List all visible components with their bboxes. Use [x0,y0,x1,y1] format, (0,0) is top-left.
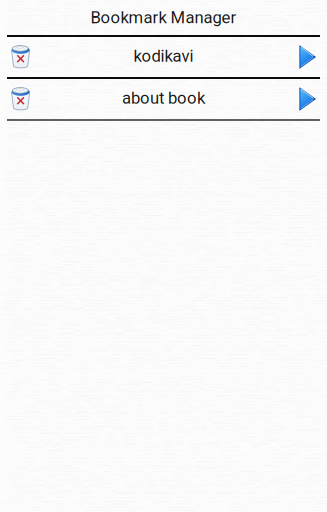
button[interactable]: Delete bookmark [11,45,31,69]
button[interactable]: Open bookmark [299,87,317,111]
button[interactable]: kodikavi [0,37,327,77]
staticText: Bookmark Manager [90,8,236,27]
button[interactable]: Open bookmark [299,45,317,69]
staticText: kodikavi [133,46,193,66]
button[interactable]: about book [0,79,327,119]
button[interactable]: Delete bookmark [11,87,31,111]
staticText: about book [122,88,205,108]
